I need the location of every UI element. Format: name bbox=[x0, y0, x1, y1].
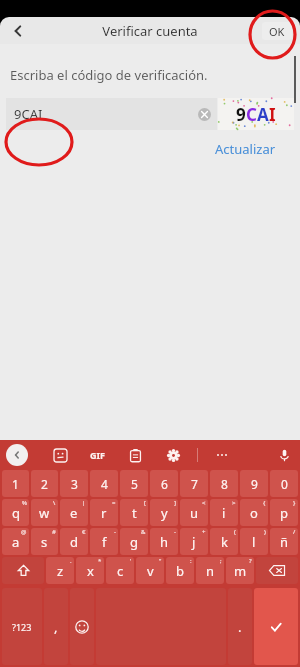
button[interactable]: 4 bbox=[90, 470, 118, 497]
button[interactable]: p bbox=[270, 499, 298, 526]
staticText: ) bbox=[264, 528, 266, 536]
button[interactable]: e bbox=[60, 499, 88, 526]
button[interactable]: a bbox=[2, 528, 29, 555]
staticText: p bbox=[280, 504, 288, 522]
button[interactable]: f bbox=[90, 528, 118, 555]
staticText: g bbox=[130, 533, 138, 551]
button[interactable]: t bbox=[120, 499, 148, 526]
staticText: ] bbox=[174, 499, 176, 507]
button[interactable]: q bbox=[2, 499, 29, 526]
button[interactable]: ñ bbox=[270, 528, 298, 555]
button[interactable]: g bbox=[120, 528, 148, 555]
button[interactable]: s bbox=[31, 528, 58, 555]
staticText: { bbox=[263, 499, 266, 507]
button[interactable]: 2 bbox=[31, 470, 58, 497]
button[interactable]: Voice input bbox=[274, 445, 294, 465]
button[interactable]: c bbox=[106, 557, 134, 584]
staticText: u bbox=[190, 504, 199, 522]
staticText: : bbox=[190, 557, 192, 565]
button[interactable]: h bbox=[150, 528, 178, 555]
staticText: z bbox=[57, 562, 64, 580]
staticText: k bbox=[221, 533, 228, 551]
staticText: * bbox=[98, 557, 102, 565]
staticText: € bbox=[82, 528, 86, 536]
button[interactable]: More options bbox=[212, 445, 232, 465]
button[interactable]: Emoji bbox=[70, 588, 94, 665]
staticText: | bbox=[82, 499, 86, 507]
button[interactable]: , bbox=[44, 588, 68, 665]
button[interactable]: 5 bbox=[120, 470, 148, 497]
staticText: 3 bbox=[71, 476, 78, 492]
staticText: > bbox=[232, 499, 236, 507]
button[interactable]: . bbox=[228, 588, 252, 665]
staticText: @ bbox=[21, 528, 27, 536]
button[interactable]: m bbox=[226, 557, 254, 584]
button[interactable]: j bbox=[180, 528, 208, 555]
button[interactable]: 0 bbox=[270, 470, 298, 497]
button[interactable]: 1 bbox=[2, 470, 29, 497]
button[interactable]: i bbox=[210, 499, 238, 526]
staticText: j bbox=[192, 533, 196, 551]
staticText: - bbox=[174, 528, 176, 536]
button[interactable]: Actualizar bbox=[213, 138, 278, 160]
button[interactable]: k bbox=[210, 528, 238, 555]
button[interactable]: Enter bbox=[254, 588, 298, 665]
button[interactable]: Backspace bbox=[256, 557, 298, 584]
staticText: b bbox=[176, 562, 184, 580]
staticText: 9CAI bbox=[14, 105, 43, 123]
staticText: y bbox=[161, 504, 168, 522]
staticText: 2 bbox=[41, 476, 48, 492]
button[interactable]: Shift bbox=[2, 557, 44, 584]
staticText: . bbox=[238, 618, 242, 636]
button[interactable]: x bbox=[76, 557, 104, 584]
button[interactable]: 9 bbox=[240, 470, 268, 497]
button[interactable]: 6 bbox=[150, 470, 178, 497]
staticText: ?123 bbox=[12, 621, 32, 633]
button[interactable]: GIF bbox=[88, 447, 107, 463]
staticText: " bbox=[159, 557, 162, 565]
staticText: o bbox=[250, 504, 258, 522]
button[interactable]: OK bbox=[262, 22, 292, 40]
staticText: + bbox=[202, 528, 206, 536]
staticText: [ bbox=[144, 499, 146, 507]
staticText: d bbox=[70, 533, 78, 551]
staticText: r bbox=[101, 504, 107, 522]
staticText: a bbox=[12, 533, 20, 551]
staticText: 9 bbox=[236, 103, 246, 126]
staticText: i bbox=[222, 504, 226, 522]
button[interactable]: 9CAI bbox=[6, 98, 217, 130]
button[interactable]: Stickers bbox=[50, 445, 70, 465]
button[interactable]: 3 bbox=[60, 470, 88, 497]
staticText: ' bbox=[130, 557, 132, 565]
button[interactable]: Clipboard bbox=[125, 445, 145, 465]
button[interactable]: 7 bbox=[180, 470, 208, 497]
button[interactable]: d bbox=[60, 528, 88, 555]
button[interactable]: v bbox=[136, 557, 164, 584]
staticText: 7 bbox=[191, 476, 198, 492]
staticText: ( bbox=[234, 528, 236, 536]
button[interactable]: n bbox=[196, 557, 224, 584]
staticText: f bbox=[102, 533, 107, 551]
staticText: GIF bbox=[90, 449, 105, 461]
staticText: / bbox=[293, 528, 296, 536]
button[interactable]: z bbox=[46, 557, 74, 584]
staticText: = bbox=[112, 499, 116, 507]
staticText: A bbox=[257, 103, 269, 126]
button[interactable]: u bbox=[180, 499, 208, 526]
button[interactable]: w bbox=[31, 499, 58, 526]
button[interactable]: ?123 bbox=[2, 588, 42, 665]
button[interactable]: Settings bbox=[163, 445, 183, 465]
button[interactable]: y bbox=[150, 499, 178, 526]
button[interactable]: Back bbox=[6, 444, 28, 466]
button[interactable]: Captcha image bbox=[218, 98, 294, 130]
staticText: n bbox=[206, 562, 215, 580]
button[interactable]: r bbox=[90, 499, 118, 526]
staticText: 4 bbox=[101, 476, 108, 492]
button[interactable]: Clear text bbox=[198, 108, 211, 121]
button[interactable]: b bbox=[166, 557, 194, 584]
button[interactable]: Back bbox=[4, 17, 32, 44]
button[interactable]: 8 bbox=[210, 470, 238, 497]
button[interactable]: o bbox=[240, 499, 268, 526]
button[interactable]: l bbox=[240, 528, 268, 555]
